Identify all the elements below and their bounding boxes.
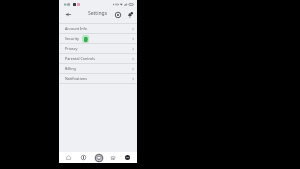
button[interactable]: Subtitles (107, 152, 118, 163)
button[interactable]: Home (63, 152, 74, 163)
staticText: Notifications (65, 76, 87, 81)
staticText: Parental Controls (65, 56, 95, 61)
button[interactable]: Back (64, 10, 73, 19)
staticText: Account Info (65, 26, 88, 31)
button[interactable]: Account (122, 152, 133, 163)
button[interactable]: Privacy (59, 44, 137, 53)
button[interactable]: Guide (78, 152, 89, 163)
button[interactable]: Security (59, 34, 137, 43)
button[interactable]: Help (113, 10, 122, 19)
staticText: Settings (88, 10, 108, 17)
button[interactable]: Parental Controls (59, 54, 137, 63)
staticText: Privacy (65, 46, 78, 51)
button[interactable]: Notifications (125, 10, 134, 19)
button[interactable]: Account Info (59, 24, 137, 33)
button[interactable]: Billing (59, 64, 137, 73)
button[interactable]: Notifications (59, 74, 137, 83)
staticText: Billing (65, 66, 76, 71)
button[interactable]: Live TV (93, 152, 104, 163)
staticText: Security (65, 36, 79, 41)
